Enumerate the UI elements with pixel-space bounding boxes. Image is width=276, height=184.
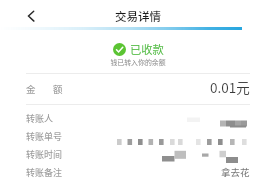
staticText: 转账时间 <box>26 148 63 161</box>
button[interactable]: 转账时间 <box>26 145 250 163</box>
staticText: 钱已转入你的余额 <box>0 57 276 67</box>
button[interactable]: 金 <box>26 74 250 104</box>
staticText: 交易详情 <box>115 8 161 25</box>
staticText: 金 <box>26 82 36 96</box>
staticText: 拿去花 <box>221 165 250 179</box>
staticText: 已收款 <box>130 41 164 57</box>
staticText: 0.01元 <box>210 77 250 97</box>
button[interactable]: 转账单号 <box>26 127 250 145</box>
staticText: 额 <box>53 82 63 96</box>
button[interactable]: 转账备注 <box>26 163 250 181</box>
button[interactable]: 转账人 <box>26 109 250 127</box>
staticText: 转账单号 <box>26 130 63 143</box>
staticText: 转账备注 <box>26 166 63 179</box>
button[interactable]: Back <box>21 9 41 23</box>
staticText: 转账人 <box>26 112 54 125</box>
